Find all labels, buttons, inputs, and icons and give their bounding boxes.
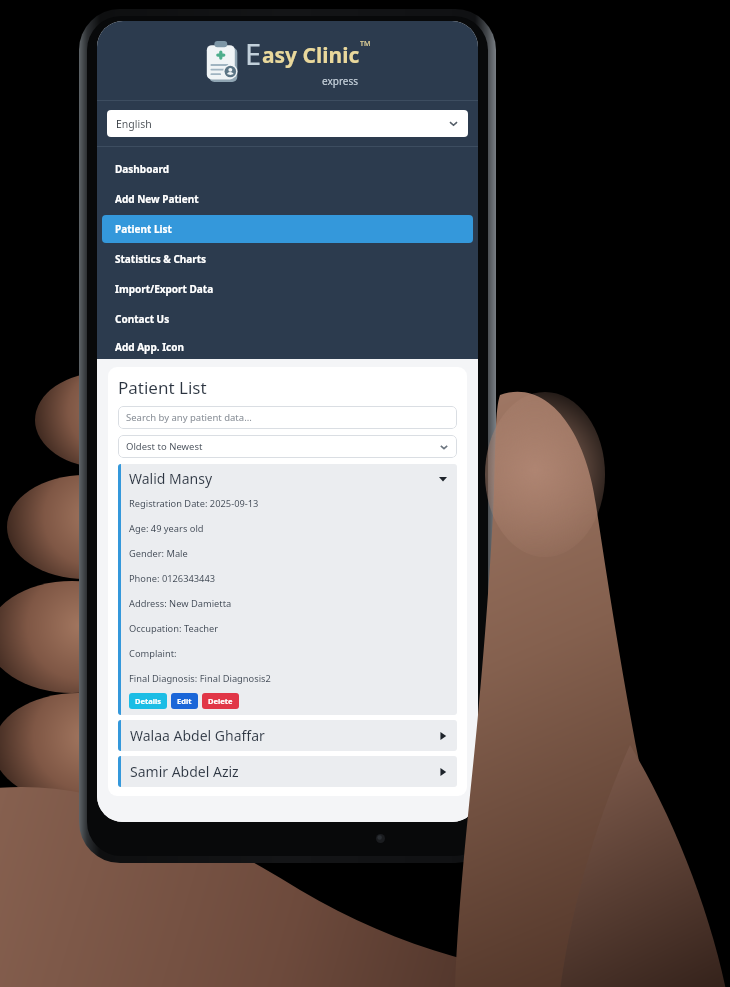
staticText: Walaa Abdel Ghaffar xyxy=(130,726,265,745)
staticText: express xyxy=(322,74,359,88)
button[interactable]: Edit xyxy=(171,693,198,709)
staticText: Details xyxy=(135,696,161,706)
staticText: Patient List xyxy=(115,222,172,236)
staticText: TM xyxy=(360,39,371,49)
staticText: Occupation: Teacher xyxy=(129,622,219,635)
button[interactable]: Search by any patient data... xyxy=(118,406,457,429)
button[interactable]: Statistics & Charts xyxy=(102,245,473,273)
staticText: Address: New Damietta xyxy=(129,597,232,610)
staticText: Registration Date: 2025-09-13 xyxy=(129,497,259,510)
staticText: Final Diagnosis: Final Diagnosis2 xyxy=(129,672,271,685)
staticText: Search by any patient data... xyxy=(126,411,252,424)
staticText: Import/Export Data xyxy=(115,282,214,296)
button[interactable]: Add New Patient xyxy=(102,185,473,213)
staticText: Patient List xyxy=(118,376,207,399)
staticText: Delete xyxy=(208,696,233,706)
staticText: Statistics & Charts xyxy=(115,252,207,266)
staticText: Add New Patient xyxy=(115,192,199,206)
staticText: Oldest to Newest xyxy=(126,440,203,453)
staticText: English xyxy=(116,117,152,131)
staticText: Add App. Icon xyxy=(115,340,184,354)
button[interactable]: Samir Abdel Aziz xyxy=(118,756,457,787)
staticText: Age: 49 years old xyxy=(129,522,204,535)
button[interactable]: Walid Mansy xyxy=(129,469,449,488)
button[interactable]: Delete xyxy=(202,693,239,709)
staticText: asy Clinic xyxy=(262,41,360,70)
other: Collapse patient xyxy=(436,472,449,485)
button[interactable]: Dashboard xyxy=(102,155,473,183)
staticText: Samir Abdel Aziz xyxy=(130,762,239,781)
button[interactable]: Oldest to Newest xyxy=(118,435,457,458)
staticText: Contact Us xyxy=(115,312,170,326)
button[interactable]: Contact Us xyxy=(102,305,473,333)
staticText: Walid Mansy xyxy=(129,469,213,488)
button[interactable]: Walaa Abdel Ghaffar xyxy=(118,720,457,751)
staticText: Complaint: xyxy=(129,647,177,660)
staticText: Gender: Male xyxy=(129,547,188,560)
button[interactable]: Import/Export Data xyxy=(102,275,473,303)
button[interactable]: Patient List xyxy=(102,215,473,243)
staticText: Edit xyxy=(177,696,192,706)
staticText: Dashboard xyxy=(115,162,169,176)
button[interactable]: English xyxy=(107,110,468,137)
staticText: E xyxy=(245,34,262,73)
button[interactable]: Details xyxy=(129,693,167,709)
staticText: Phone: 0126343443 xyxy=(129,572,216,585)
button[interactable]: Add App. Icon xyxy=(102,335,473,358)
